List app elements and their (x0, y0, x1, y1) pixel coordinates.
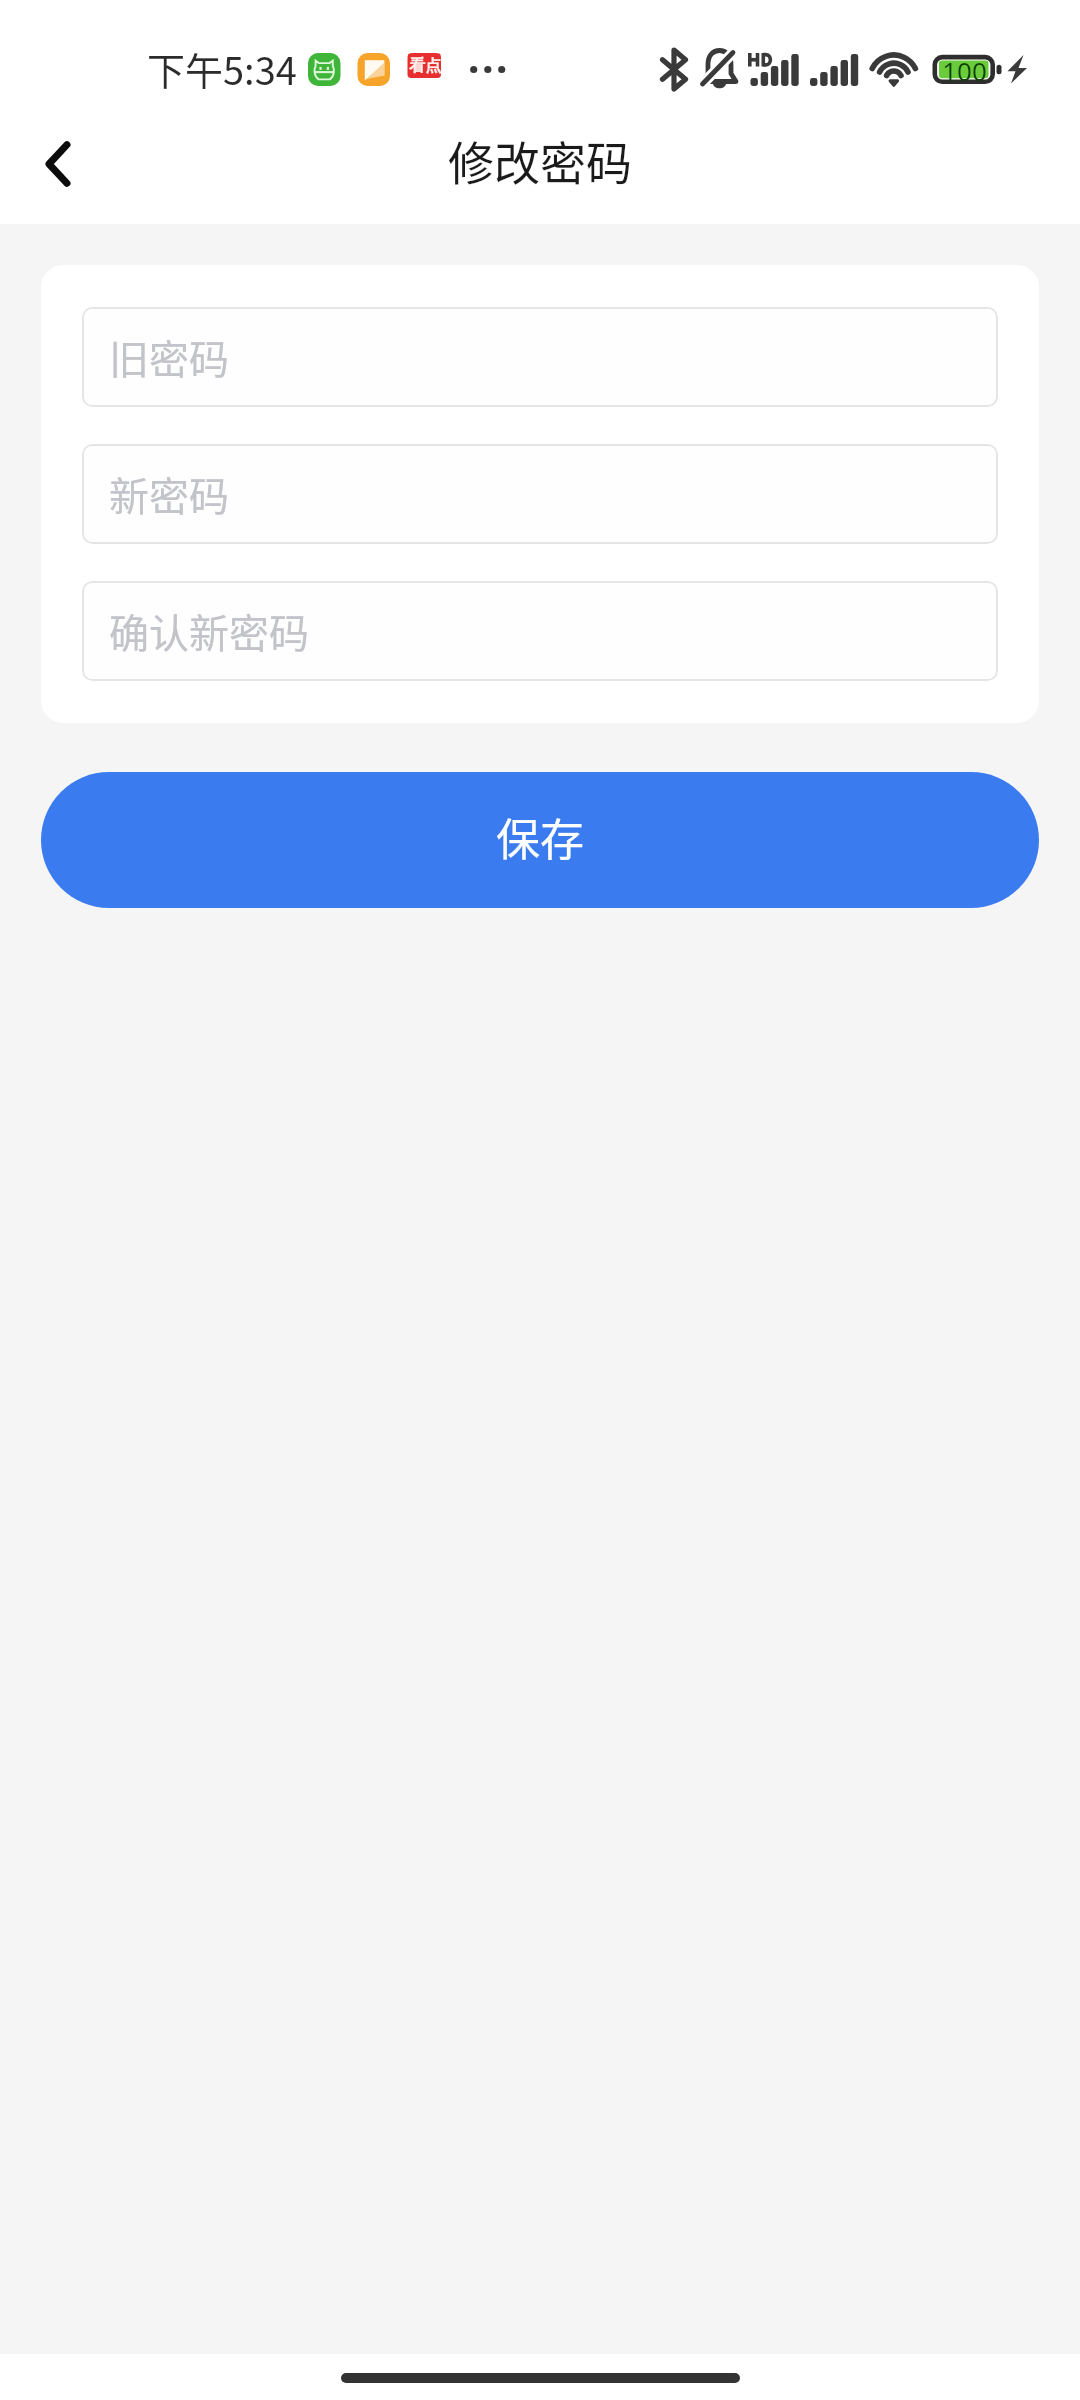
staticText: 旧密码 (109, 328, 229, 386)
button[interactable]: 确认新密码 (82, 581, 998, 681)
button[interactable]: Back (22, 128, 94, 200)
staticText: 修改密码 (448, 127, 632, 194)
button[interactable]: 保存 (41, 772, 1039, 908)
staticText: 看点 (409, 56, 441, 76)
staticText: 保存 (496, 805, 584, 869)
button[interactable]: 旧密码 (82, 307, 998, 407)
staticText: 100 (942, 53, 987, 86)
staticText: 下午5:34 (147, 41, 297, 96)
staticText: 新密码 (109, 465, 229, 523)
staticText: 确认新密码 (109, 602, 309, 660)
button[interactable]: 新密码 (82, 444, 998, 544)
